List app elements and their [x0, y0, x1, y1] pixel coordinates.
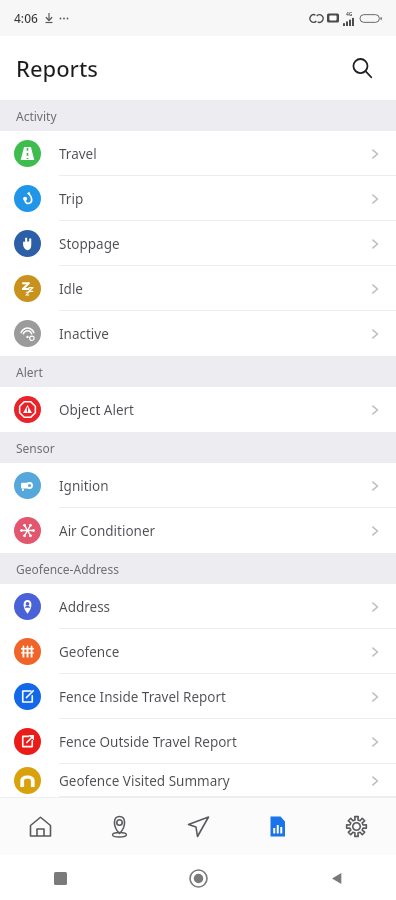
button[interactable]: Navigate — [159, 797, 238, 855]
button[interactable]: Trip — [0, 176, 396, 221]
staticText: Geofence — [59, 643, 120, 661]
staticText: Inactive — [59, 325, 109, 343]
staticText: Fence Inside Travel Report — [59, 688, 226, 706]
staticText: Activity — [16, 108, 57, 124]
button[interactable]: Recents — [40, 858, 80, 898]
button[interactable]: Object Alert — [0, 387, 396, 432]
staticText: Travel — [59, 145, 97, 163]
staticText: Alert — [16, 364, 43, 380]
staticText: Stoppage — [59, 235, 120, 253]
staticText: Sensor — [16, 440, 55, 456]
button[interactable]: Geofence — [0, 629, 396, 674]
button[interactable]: Inactive — [0, 311, 396, 356]
button[interactable]: Back — [316, 858, 356, 898]
button[interactable]: Idle — [0, 266, 396, 311]
staticText: Idle — [59, 280, 83, 298]
button[interactable]: Air Conditioner — [0, 508, 396, 553]
button[interactable]: Settings — [317, 797, 396, 855]
button[interactable]: Fence Outside Travel Report — [0, 719, 396, 764]
staticText: 4:06 — [14, 10, 38, 26]
button[interactable]: Reports — [238, 797, 317, 855]
staticText: Object Alert — [59, 401, 134, 419]
staticText: 4G — [346, 11, 353, 18]
staticText: Geofence Visited Summary — [59, 772, 230, 790]
button[interactable]: Fence Inside Travel Report — [0, 674, 396, 719]
button[interactable]: Places — [80, 797, 159, 855]
button[interactable]: Ignition — [0, 463, 396, 508]
staticText: Fence Outside Travel Report — [59, 733, 237, 751]
button[interactable]: Home — [0, 797, 80, 855]
button[interactable]: Address — [0, 584, 396, 629]
staticText: Reports — [16, 53, 99, 83]
button[interactable]: Stoppage — [0, 221, 396, 266]
button[interactable]: Home — [178, 858, 218, 898]
staticText: Ignition — [59, 477, 109, 495]
staticText: Trip — [59, 190, 84, 208]
staticText: Address — [59, 598, 111, 616]
button[interactable]: Search — [340, 46, 384, 90]
staticText: Geofence-Address — [16, 561, 119, 577]
button[interactable]: Travel — [0, 131, 396, 176]
button[interactable]: Geofence Visited Summary — [0, 764, 396, 797]
staticText: Air Conditioner — [59, 522, 156, 540]
